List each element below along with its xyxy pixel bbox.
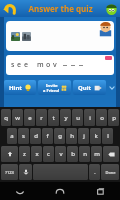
button[interactable]: b (67, 146, 78, 162)
staticText: Answer the quiz (28, 3, 93, 14)
button[interactable]: Quit (73, 80, 106, 95)
button[interactable]: Done (101, 164, 119, 180)
staticText: . (94, 169, 96, 176)
staticText: e (17, 60, 22, 70)
staticText: n (83, 150, 87, 158)
staticText: m (37, 60, 44, 70)
staticText: j (83, 132, 85, 140)
staticText: u (76, 114, 80, 122)
button[interactable]: k (90, 128, 101, 144)
staticText: t (52, 114, 55, 122)
staticText: c (47, 150, 50, 158)
button[interactable]: g (54, 128, 65, 144)
staticText: Invite (46, 83, 58, 88)
staticText: Quit (78, 84, 92, 92)
button[interactable]: Hint (4, 80, 36, 95)
button[interactable]: r (36, 109, 47, 126)
button[interactable]: x (31, 146, 42, 162)
button[interactable]: d (30, 128, 41, 144)
button[interactable]: Back (2, 1, 18, 17)
staticText: q (4, 114, 8, 122)
staticText: s (11, 60, 15, 70)
staticText: i (89, 114, 91, 122)
staticText: ?123 (5, 170, 14, 175)
staticText: z (23, 150, 26, 158)
button[interactable]: . (89, 164, 100, 180)
button[interactable] (6, 21, 114, 51)
button[interactable]: u (72, 109, 83, 126)
button[interactable] (33, 164, 88, 180)
staticText: v (53, 60, 57, 70)
button[interactable]: Back (0, 182, 40, 200)
button[interactable]: Backspace (103, 146, 119, 162)
button[interactable]: l (102, 128, 113, 144)
staticText: v (59, 150, 63, 158)
button[interactable]: s (18, 128, 29, 144)
button[interactable]: Invite (38, 80, 71, 95)
button[interactable]: Home (40, 182, 80, 200)
staticText: o (46, 60, 51, 70)
staticText: o (100, 114, 104, 122)
button[interactable]: t (48, 109, 59, 126)
button[interactable]: i (84, 109, 95, 126)
staticText: r (40, 114, 43, 122)
button[interactable]: n (79, 146, 90, 162)
button[interactable]: Voice input (19, 164, 32, 180)
button[interactable]: More options (108, 80, 116, 95)
button[interactable]: Recent apps (80, 182, 120, 200)
staticText: a (10, 132, 14, 140)
button[interactable]: j (78, 128, 89, 144)
staticText: Done (105, 170, 116, 175)
staticText: p (112, 114, 116, 122)
staticText: y (64, 114, 68, 122)
staticText: a Friend (43, 88, 60, 93)
staticText: b (71, 150, 75, 158)
staticText: g (58, 132, 62, 140)
button[interactable]: v (55, 146, 66, 162)
button[interactable]: e (24, 109, 35, 126)
button[interactable]: z (19, 146, 30, 162)
button[interactable]: Shift (1, 146, 18, 162)
staticText: h (70, 132, 74, 140)
staticText: s (22, 132, 25, 140)
staticText: e (24, 60, 29, 70)
staticText: m (94, 150, 100, 158)
staticText: w (15, 114, 20, 122)
button[interactable]: h (66, 128, 77, 144)
staticText: e (28, 114, 32, 122)
button[interactable]: a (7, 128, 17, 144)
staticText: d (34, 132, 38, 140)
button[interactable]: y (60, 109, 71, 126)
button[interactable]: ?123 (1, 164, 18, 180)
staticText: f (46, 132, 49, 140)
button[interactable]: c (43, 146, 54, 162)
button[interactable]: o (96, 109, 107, 126)
button[interactable]: q (1, 109, 11, 126)
staticText: k (94, 132, 98, 140)
button[interactable]: p (108, 109, 119, 126)
button[interactable]: m (91, 146, 102, 162)
button[interactable]: w (12, 109, 23, 126)
staticText: x (35, 150, 39, 158)
staticText: Hint (9, 84, 22, 92)
staticText: l (107, 132, 109, 140)
button[interactable]: s (6, 55, 114, 75)
button[interactable]: Profile (104, 2, 118, 16)
button[interactable]: f (42, 128, 53, 144)
